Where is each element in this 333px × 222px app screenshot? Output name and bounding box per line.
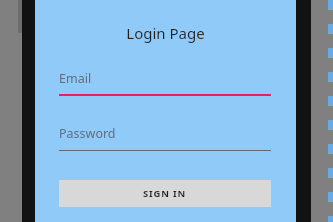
staticText: Password bbox=[59, 125, 116, 142]
staticText: Login Page bbox=[35, 23, 296, 43]
staticText: Email bbox=[59, 70, 92, 87]
staticText: SIGN IN bbox=[143, 187, 187, 200]
button[interactable]: Password bbox=[59, 123, 271, 151]
button[interactable]: SIGN IN bbox=[59, 180, 271, 207]
button[interactable]: Email bbox=[59, 68, 271, 96]
